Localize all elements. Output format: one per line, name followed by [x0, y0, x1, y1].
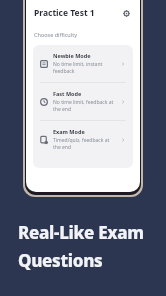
- button[interactable]: Exam Mode: [33, 121, 133, 158]
- staticText: Newbie Mode: [53, 52, 91, 59]
- staticText: Practice Test 1: [34, 7, 95, 19]
- staticText: Choose difficulty: [34, 31, 77, 38]
- staticText: Exam Mode: [53, 128, 85, 135]
- staticText: Fast Mode: [53, 90, 82, 97]
- button[interactable]: Settings: [121, 8, 132, 19]
- staticText: Timed/quiz, feedback at the end: [53, 137, 117, 151]
- staticText: No time limit, instant feedback: [53, 61, 117, 75]
- staticText: Real-Like Exam: [18, 221, 144, 244]
- staticText: Questions: [18, 249, 103, 272]
- staticText: No time limit, feedback at the end: [53, 99, 117, 113]
- button[interactable]: Newbie Mode: [33, 45, 133, 82]
- button[interactable]: Fast Mode: [33, 83, 133, 120]
